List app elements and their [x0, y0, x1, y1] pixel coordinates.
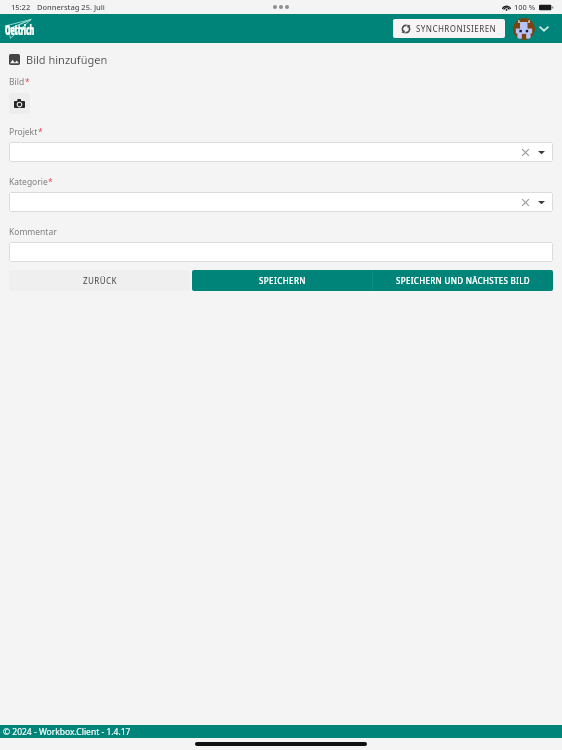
other: Löschen — [521, 198, 530, 207]
button[interactable]: Foto aufnehmen — [9, 93, 30, 114]
staticText: Oettrich — [5, 21, 34, 39]
button[interactable]: SPEICHERN — [192, 270, 372, 291]
button[interactable]: SYNCHRONISIEREN — [393, 19, 505, 38]
other: Löschen — [521, 148, 530, 157]
staticText: 15:22 — [11, 2, 31, 12]
staticText: Bild hinzufügen — [26, 52, 108, 67]
button[interactable]: Benutzerprofil — [513, 18, 535, 40]
button[interactable] — [9, 242, 553, 262]
staticText: SYNCHRONISIEREN — [416, 23, 497, 34]
button[interactable]: Löschen — [9, 192, 553, 212]
staticText: Projekt — [9, 126, 38, 138]
staticText: © 2024 - Workbox.Client - 1.4.17 — [3, 726, 131, 738]
staticText: Donnerstag 25. Juli — [37, 2, 105, 12]
staticText: Kommentar — [9, 226, 57, 238]
staticText: SPEICHERN — [259, 275, 306, 286]
staticText: ZURÜCK — [83, 275, 117, 286]
staticText: * — [38, 126, 43, 138]
button[interactable]: Oettrich Logo — [4, 18, 66, 39]
staticText: Bild — [9, 76, 25, 88]
button[interactable]: Löschen — [9, 142, 553, 162]
staticText: 100 % — [514, 2, 536, 12]
staticText: * — [25, 76, 30, 88]
button[interactable]: Menü öffnen — [539, 25, 549, 32]
staticText: SPEICHERN UND NÄCHSTES BILD — [396, 275, 530, 286]
staticText: Kategorie — [9, 176, 48, 188]
button[interactable]: ZURÜCK — [9, 270, 190, 291]
button[interactable]: SPEICHERN UND NÄCHSTES BILD — [373, 270, 553, 291]
staticText: * — [48, 176, 53, 188]
